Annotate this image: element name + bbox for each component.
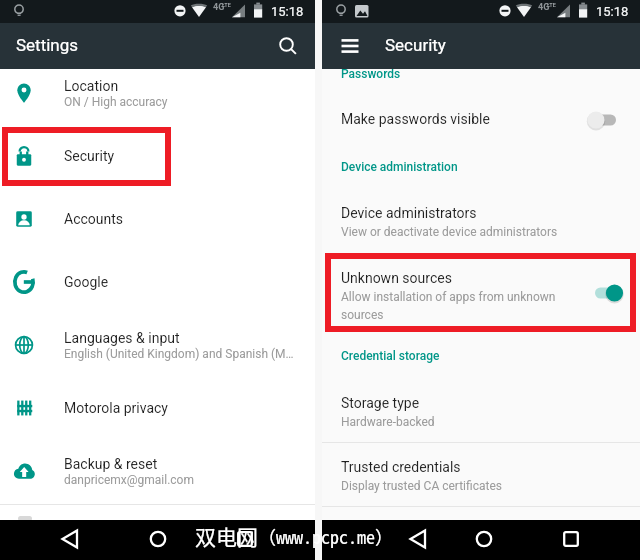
staticText: Display trusted CA certificates xyxy=(341,479,502,493)
staticText: 15:18 xyxy=(271,4,304,19)
staticText: Location xyxy=(64,78,119,94)
staticText: （www.pcpc.me） xyxy=(258,523,393,549)
staticText: Unknown sources xyxy=(341,270,452,286)
staticText: View or deactivate device administrators xyxy=(341,225,558,239)
staticText: 15:18 xyxy=(596,4,629,19)
staticText: Make passwords visible xyxy=(341,111,490,127)
button[interactable]: Security xyxy=(0,125,315,187)
staticText: 双电网 xyxy=(195,521,258,551)
staticText: danpricemx@gmail.com xyxy=(64,473,194,487)
button[interactable]: Toggle off xyxy=(578,101,624,139)
staticText: 4G xyxy=(538,2,550,13)
button[interactable]: Storage type xyxy=(322,381,640,442)
staticText: Motorola privacy xyxy=(64,400,168,416)
button[interactable]: Open navigation menu xyxy=(331,27,369,65)
button[interactable]: Google xyxy=(0,251,315,313)
staticText: ON / High accuracy xyxy=(64,95,168,109)
button[interactable]: Make passwords visible xyxy=(322,93,640,145)
staticText: Device administration xyxy=(341,160,458,174)
button[interactable]: Trusted credentials xyxy=(322,443,640,506)
staticText: Settings xyxy=(16,35,79,55)
staticText: LTE xyxy=(222,2,231,8)
staticText: English (United Kingdom) and Spanish (M… xyxy=(64,347,294,361)
button[interactable]: Motorola privacy xyxy=(0,377,315,439)
button[interactable]: Accounts xyxy=(0,188,315,250)
staticText: Passwords xyxy=(341,67,401,81)
staticText: LTE xyxy=(547,2,556,8)
button[interactable]: Location xyxy=(0,62,315,124)
button[interactable]: Backup & reset xyxy=(0,440,315,502)
staticText: Accounts xyxy=(64,211,124,227)
button[interactable]: Toggle on xyxy=(578,274,624,312)
staticText: Security xyxy=(64,148,115,164)
button[interactable]: Languages & input xyxy=(0,314,315,376)
staticText: Security xyxy=(385,35,446,55)
button[interactable]: Device administrators xyxy=(322,190,640,245)
staticText: Device administrators xyxy=(341,205,477,221)
staticText: Trusted credentials xyxy=(341,459,461,475)
staticText: sources xyxy=(341,308,384,322)
staticText: Languages & input xyxy=(64,330,180,346)
staticText: Credential storage xyxy=(341,349,440,363)
staticText: Storage type xyxy=(341,395,420,411)
staticText: Google xyxy=(64,274,109,290)
staticText: Backup & reset xyxy=(64,456,158,472)
button[interactable]: Unknown sources xyxy=(322,256,640,332)
staticText: Allow installation of apps from unknown xyxy=(341,290,556,304)
staticText: Hardware-backed xyxy=(341,415,435,429)
button[interactable]: Search xyxy=(268,26,308,66)
staticText: 4G xyxy=(213,2,225,13)
